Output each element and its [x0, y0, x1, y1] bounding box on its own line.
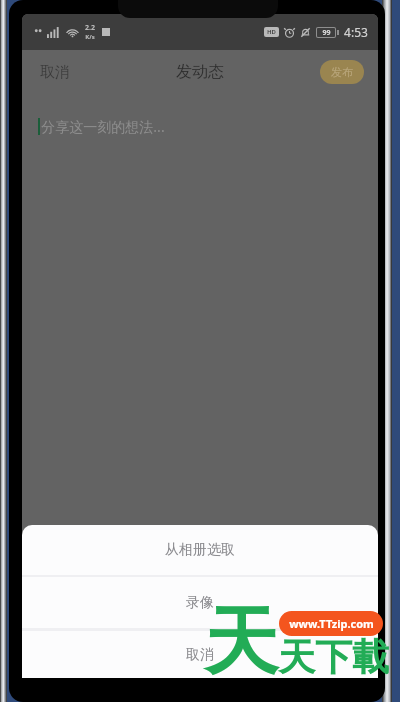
button[interactable]: 从相册选取 [22, 525, 378, 575]
staticText: 天下載 [278, 634, 389, 681]
staticText: 99 [322, 28, 331, 37]
button[interactable]: 发布 [320, 60, 364, 84]
staticText: 发动态 [176, 62, 224, 82]
button[interactable]: 取消 [22, 631, 378, 678]
staticText: 分享这一刻的想法... [41, 117, 165, 136]
staticText: HD [267, 28, 276, 36]
staticText: 取消 [186, 646, 214, 664]
staticText: 录像 [186, 594, 214, 612]
staticText: K/s [85, 33, 95, 41]
staticText: 4:53 [344, 24, 368, 40]
button[interactable]: 取消 [28, 55, 82, 90]
staticText: 从相册选取 [165, 541, 235, 559]
button[interactable]: 录像 [22, 577, 378, 628]
staticText: www.TTzip.com [289, 616, 374, 631]
staticText: 天 [204, 596, 278, 689]
staticText: 2.2 [85, 23, 95, 33]
staticText: 发布 [331, 65, 353, 79]
staticText: 取消 [40, 63, 70, 82]
